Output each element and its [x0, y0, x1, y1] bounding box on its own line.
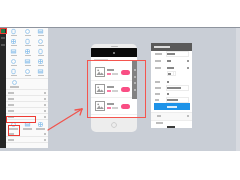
button[interactable] [154, 103, 190, 110]
button[interactable]: Action [121, 87, 130, 92]
button[interactable] [34, 69, 47, 75]
button[interactable] [6, 96, 48, 102]
button[interactable] [6, 137, 48, 143]
button[interactable]: Action [91, 98, 137, 114]
button[interactable] [21, 29, 34, 35]
button[interactable] [166, 85, 189, 91]
button[interactable] [151, 113, 192, 120]
button[interactable]: Action [121, 70, 130, 75]
button[interactable] [34, 59, 47, 65]
button[interactable] [21, 49, 34, 55]
button[interactable] [166, 97, 189, 103]
button[interactable] [6, 131, 48, 137]
button[interactable] [166, 51, 189, 57]
button[interactable] [21, 39, 34, 45]
button[interactable] [21, 59, 34, 65]
button[interactable] [7, 59, 20, 65]
button[interactable] [6, 114, 48, 120]
button[interactable]: Home [111, 122, 117, 128]
button[interactable] [6, 90, 48, 96]
button[interactable] [7, 39, 20, 45]
button[interactable]: Action [121, 104, 130, 109]
button[interactable]: Action [91, 64, 137, 80]
button[interactable] [21, 69, 34, 75]
button[interactable] [7, 49, 20, 55]
button[interactable]: Action [91, 81, 137, 97]
button[interactable] [167, 71, 176, 76]
button[interactable] [6, 108, 48, 114]
button[interactable] [7, 122, 20, 129]
button[interactable] [8, 80, 21, 87]
button[interactable] [34, 39, 47, 45]
button[interactable] [6, 102, 48, 108]
button[interactable] [21, 122, 34, 129]
button[interactable] [7, 69, 20, 75]
button[interactable] [34, 49, 47, 55]
button[interactable] [34, 29, 47, 35]
button[interactable] [7, 29, 20, 35]
button[interactable] [34, 122, 47, 129]
